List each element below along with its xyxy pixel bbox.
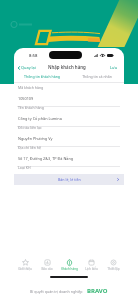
- button[interactable]: Lịch biểu: [80, 254, 102, 276]
- button[interactable]: Tên khách hàng: [14, 107, 124, 127]
- button[interactable]: Quay lại: [14, 63, 40, 72]
- button[interactable]: Mã khách hàng: [14, 87, 124, 107]
- button[interactable]: Địa chỉ liên hệ: [14, 147, 124, 167]
- staticText: Địa chỉ liên hệ: [18, 145, 41, 150]
- staticText: Mã khách hàng: [18, 85, 44, 90]
- staticText: Báo cáo: [41, 267, 53, 271]
- staticText: Đối tác liên lạc: [18, 125, 42, 130]
- button[interactable]: Giới thiệu: [14, 254, 36, 276]
- staticText: Nhập khách hàng: [48, 64, 86, 70]
- staticText: Công ty Cổ phần Lumina: [18, 116, 62, 121]
- button[interactable]: Thông tin khách hàng: [14, 71, 69, 83]
- staticText: Loại KH: [18, 165, 31, 170]
- staticText: 8:58: [29, 53, 38, 59]
- button[interactable]: Thông tin cá nhân: [69, 71, 124, 83]
- button[interactable]: Lưu: [104, 63, 124, 72]
- button[interactable]: Thiết lập: [102, 254, 124, 276]
- staticText: Quay lại: [21, 65, 36, 70]
- staticText: Khách hàng: [61, 267, 78, 271]
- staticText: Bí quyết quản trị doanh nghiệp: [30, 289, 83, 294]
- button[interactable]: Báo cáo: [36, 254, 58, 276]
- staticText: Thiết lập: [107, 267, 120, 271]
- staticText: Tên khách hàng: [18, 105, 44, 110]
- staticText: Nguyễn Phương Vy: [18, 136, 53, 141]
- staticText: 1050109: [18, 96, 34, 101]
- button[interactable]: Bán lẻ, lẻ tiền: [14, 174, 124, 185]
- staticText: Thông tin cá nhân: [82, 74, 112, 79]
- button[interactable]: Khách hàng: [58, 254, 80, 276]
- staticText: Thông tin khách hàng: [24, 74, 60, 79]
- staticText: Giới thiệu: [18, 267, 32, 271]
- staticText: BRAVO: [87, 287, 108, 295]
- staticText: Bán lẻ, lẻ tiền: [58, 177, 81, 182]
- staticText: Lịch biểu: [85, 267, 98, 271]
- button[interactable]: Đối tác liên lạc: [14, 127, 124, 147]
- staticText: Số 17, Đường 2&3, TP Đà Nẵng: [18, 156, 74, 161]
